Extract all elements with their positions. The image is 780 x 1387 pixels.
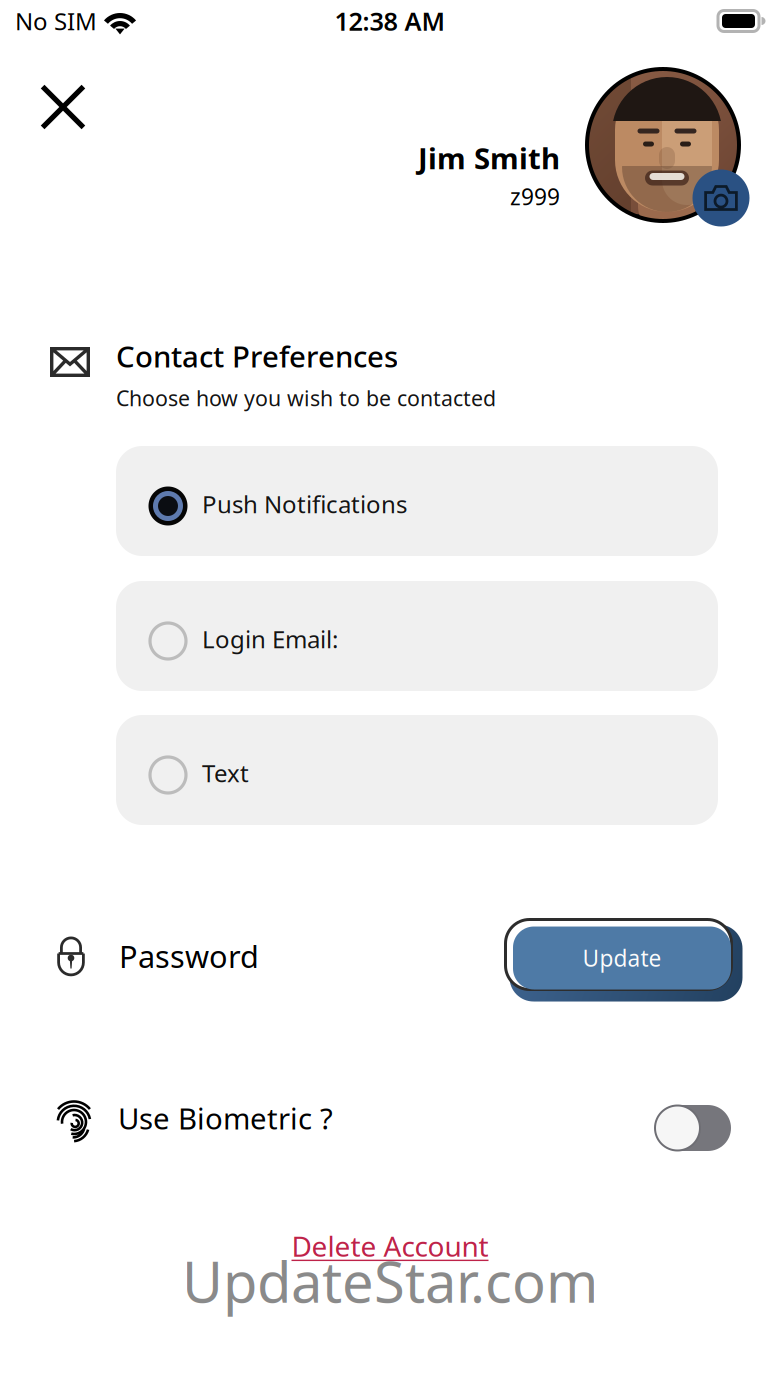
staticText: z999 xyxy=(510,181,560,211)
button[interactable]: Push Notifications xyxy=(116,446,718,556)
staticText: Delete Account xyxy=(291,1227,488,1265)
button[interactable]: Login Email: xyxy=(116,581,718,691)
staticText: Update xyxy=(582,943,661,973)
button[interactable]: Close xyxy=(28,72,98,142)
button[interactable]: Text xyxy=(116,715,718,825)
staticText: No SIM xyxy=(15,5,97,37)
staticText: Text xyxy=(202,757,249,789)
staticText: UpdateStar.com xyxy=(182,1244,598,1318)
staticText: Use Biometric ? xyxy=(118,1098,333,1137)
staticText: 12:38 AM xyxy=(334,4,445,38)
staticText: Contact Preferences xyxy=(116,336,398,375)
button[interactable]: Update xyxy=(501,915,742,1000)
button[interactable]: Delete Account xyxy=(285,1221,494,1271)
button[interactable]: Use Biometric xyxy=(655,1105,731,1151)
staticText: Login Email: xyxy=(202,623,338,655)
staticText: Push Notifications xyxy=(202,488,407,520)
staticText: Jim Smith xyxy=(418,138,560,177)
button[interactable]: Change profile photo xyxy=(577,59,749,231)
staticText: Choose how you wish to be contacted xyxy=(116,384,496,412)
staticText: Password xyxy=(119,936,259,976)
